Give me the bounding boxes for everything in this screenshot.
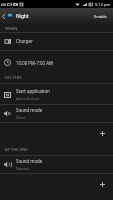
button[interactable]: Add [0, 177, 113, 191]
staticText: Charger [16, 38, 33, 44]
button[interactable]: Sound mode [0, 156, 113, 173]
staticText: Night [16, 13, 29, 20]
button[interactable]: Enable [88, 10, 113, 23]
staticText: Alarm & clock [16, 96, 40, 101]
staticText: Start application [16, 88, 50, 94]
button[interactable]: Add [0, 126, 113, 140]
button[interactable]: Start application [0, 84, 113, 104]
button[interactable]: Sound mode [0, 105, 113, 122]
staticText: 10:00 PM-7:00 AM [16, 60, 54, 66]
staticText: 5:12 pm [95, 2, 111, 7]
staticText: WHEN [5, 26, 18, 32]
staticText: Normal [16, 166, 29, 171]
staticText: Silent [16, 115, 26, 120]
button[interactable]: Charger [0, 33, 113, 49]
staticText: DO THIS [5, 75, 22, 81]
button[interactable]: Back [0, 8, 7, 24]
staticText: Sound mode [16, 158, 43, 164]
staticText: AT THE END [5, 147, 29, 153]
button[interactable]: 10:00 PM-7:00 AM [0, 51, 113, 74]
staticText: Enable [94, 14, 107, 19]
staticText: Sound mode [16, 107, 43, 113]
